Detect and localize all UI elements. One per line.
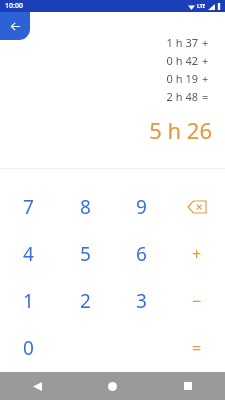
button[interactable]: Recent apps	[150, 372, 225, 400]
staticText: −	[192, 290, 202, 312]
button[interactable]: Home	[75, 372, 150, 400]
staticText: 9	[136, 194, 147, 220]
staticText: 7	[23, 194, 34, 220]
staticText: 2 h 48	[166, 89, 198, 104]
button[interactable]: Backspace	[169, 183, 225, 230]
staticText: 1 h 37	[166, 35, 198, 50]
staticText: LTE	[197, 3, 206, 10]
staticText: +	[202, 71, 209, 86]
staticText: 0	[23, 335, 34, 361]
button[interactable]: =	[169, 324, 225, 371]
button[interactable]: 5	[57, 230, 113, 277]
staticText: 8	[80, 194, 91, 220]
staticText: 10:00	[5, 1, 23, 11]
button[interactable]: 3	[113, 277, 169, 324]
staticText: =	[202, 89, 209, 104]
button[interactable]: 4	[0, 230, 57, 277]
staticText: =	[192, 337, 202, 359]
button[interactable]: 0	[0, 324, 57, 371]
staticText: 5 h 26	[149, 115, 212, 145]
staticText: 3	[136, 288, 147, 314]
staticText: +	[202, 53, 209, 68]
staticText: 0 h 19	[166, 71, 198, 86]
button[interactable]: Back	[0, 12, 30, 40]
staticText: 6	[136, 241, 147, 267]
button[interactable]: −	[169, 277, 225, 324]
button[interactable]: 2	[57, 277, 113, 324]
staticText: 0 h 42	[166, 53, 198, 68]
button[interactable]: 9	[113, 183, 169, 230]
staticText: +	[192, 243, 202, 265]
button[interactable]: 6	[113, 230, 169, 277]
staticText: 4	[23, 241, 34, 267]
staticText: 2	[80, 288, 91, 314]
button[interactable]: Back	[0, 372, 75, 400]
staticText: 1	[23, 288, 34, 314]
button[interactable]: 8	[57, 183, 113, 230]
staticText: +	[202, 35, 209, 50]
button[interactable]: +	[169, 230, 225, 277]
button[interactable]: 7	[0, 183, 57, 230]
staticText: 5	[80, 241, 91, 267]
button[interactable]: 1	[0, 277, 57, 324]
